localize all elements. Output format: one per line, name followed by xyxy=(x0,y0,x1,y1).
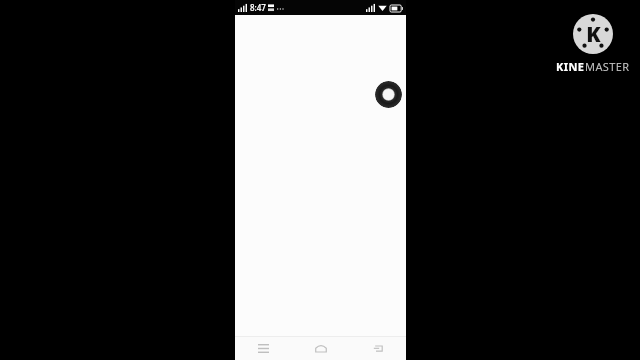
button[interactable]: Screen recorder xyxy=(375,81,402,108)
button[interactable]: Recent apps xyxy=(235,336,292,360)
staticText: 8:47 xyxy=(250,2,266,13)
staticText: MASTER xyxy=(585,59,630,74)
staticText: KINE xyxy=(556,59,585,74)
staticText: K xyxy=(586,20,601,49)
button[interactable]: Home xyxy=(292,336,349,360)
button[interactable]: Back xyxy=(349,336,406,360)
